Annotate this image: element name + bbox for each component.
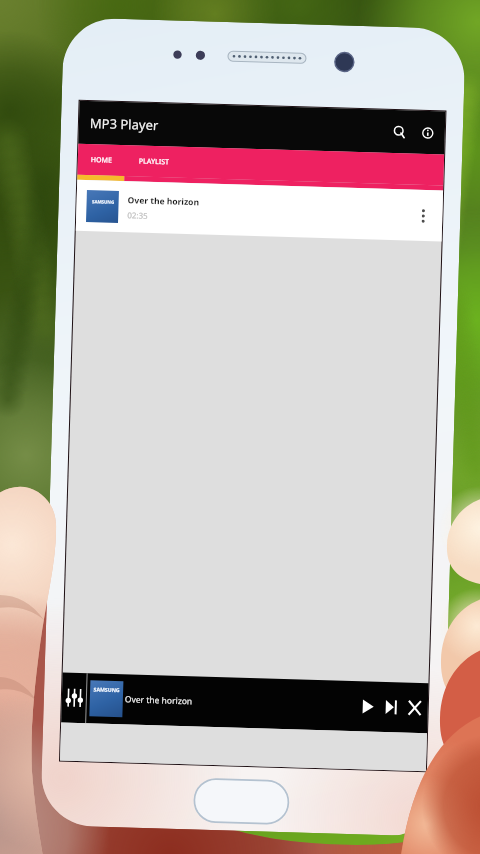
button[interactable]: HOME	[77, 144, 125, 176]
staticText: Over the horizon	[125, 693, 358, 712]
button[interactable]: Info	[413, 111, 442, 154]
button[interactable]: PLAYLIST	[124, 145, 184, 178]
button[interactable]: Next	[377, 682, 405, 733]
button[interactable]: Equalizer	[61, 672, 87, 723]
staticText: 02:35	[127, 209, 148, 221]
staticText: SAMSUNG	[91, 198, 115, 205]
staticText: HOME	[91, 155, 113, 166]
button[interactable]: Search	[385, 110, 414, 154]
staticText: SAMSUNG	[93, 685, 120, 693]
button[interactable]: More options	[410, 190, 437, 241]
staticText: Over the horizon	[127, 194, 200, 208]
staticText: PLAYLIST	[139, 156, 170, 167]
button[interactable]: Close	[404, 683, 425, 733]
staticText: MP3 Player	[90, 114, 386, 141]
button[interactable]: Play	[357, 681, 378, 732]
button[interactable]: SAMSUNG	[76, 180, 443, 241]
